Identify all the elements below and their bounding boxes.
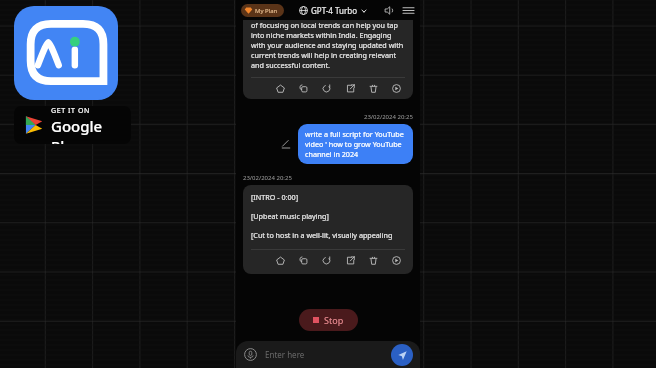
- button[interactable]: My Plan: [244, 4, 278, 17]
- staticText: write a full script for YouTube video ' …: [305, 129, 406, 159]
- button[interactable]: Like: [273, 81, 287, 95]
- button[interactable]: Edit: [279, 137, 293, 151]
- button[interactable]: Play: [389, 81, 403, 95]
- button[interactable]: Send: [391, 344, 413, 366]
- staticText: 23/02/2024 20:25: [243, 174, 292, 182]
- staticText: [INTRO - 0:00]: [251, 192, 299, 202]
- button[interactable]: App icon: [14, 6, 118, 100]
- staticText: of focusing on local trends can help you…: [251, 20, 405, 70]
- staticText: [Upbeat music playing]: [251, 211, 329, 221]
- button[interactable]: Stop: [299, 309, 358, 331]
- button[interactable]: Delete: [366, 253, 380, 267]
- button[interactable]: Sound: [382, 3, 396, 17]
- button[interactable]: GET IT ON: [22, 106, 123, 144]
- button[interactable]: Delete: [366, 81, 380, 95]
- button[interactable]: Copy: [296, 253, 310, 267]
- staticText: GPT-4 Turbo: [311, 5, 358, 16]
- button[interactable]: write a full script for YouTube video ' …: [298, 124, 413, 164]
- button[interactable]: Regenerate: [319, 81, 333, 95]
- button[interactable]: Share: [343, 81, 357, 95]
- button[interactable]: Share: [343, 253, 357, 267]
- staticText: Google Play: [51, 116, 123, 144]
- button[interactable]: GPT-4 Turbo: [299, 5, 367, 16]
- button[interactable]: Voice input: [243, 347, 258, 362]
- staticText: My Plan: [255, 7, 278, 15]
- staticText: GET IT ON: [51, 106, 90, 116]
- staticText: Enter here: [265, 349, 305, 360]
- button[interactable]: Regenerate: [319, 253, 333, 267]
- button[interactable]: Play: [389, 253, 403, 267]
- button[interactable]: Copy: [296, 81, 310, 95]
- staticText: Stop: [324, 314, 344, 326]
- button[interactable]: Menu: [401, 3, 415, 17]
- staticText: 23/02/2024 20:25: [364, 113, 413, 121]
- button[interactable]: Like: [273, 253, 287, 267]
- staticText: [Cut to host in a well-lit, visually app…: [251, 230, 393, 240]
